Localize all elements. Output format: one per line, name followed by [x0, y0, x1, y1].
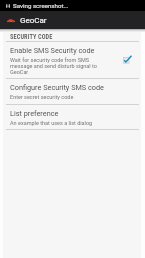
- staticText: An example that uses a list dialog: [10, 120, 93, 126]
- staticText: Enter secret security code: [10, 94, 74, 100]
- staticText: Enable SMS Security code: [10, 46, 95, 55]
- staticText: Saving screenshot...: [13, 2, 69, 9]
- staticText: Configure Security SMS code: [10, 83, 104, 92]
- staticText: Wait for security code from SMS message …: [10, 57, 111, 75]
- button[interactable]: Enable SMS Security code: [0, 42, 145, 78]
- other: GeoCar app icon: [7, 16, 15, 24]
- button[interactable]: GeoCar app icon: [0, 11, 145, 29]
- staticText: List preference: [10, 109, 59, 118]
- staticText: SECURITY CODE: [10, 33, 53, 40]
- staticText: GeoCar: [20, 16, 47, 25]
- other: Enable SMS Security code checkbox: [111, 42, 145, 78]
- button[interactable]: Configure Security SMS code: [0, 79, 145, 104]
- button[interactable]: List preference: [0, 105, 145, 129]
